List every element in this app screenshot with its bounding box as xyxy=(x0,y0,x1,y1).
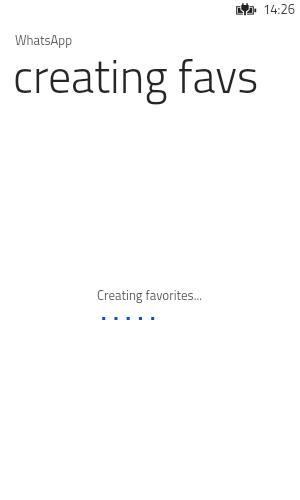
other: Loading xyxy=(0,317,300,322)
staticText: 14:26 xyxy=(263,0,295,19)
button[interactable]: creating favs xyxy=(13,41,259,111)
staticText: Creating favorites... xyxy=(97,285,203,305)
button[interactable]: 14:26 xyxy=(263,0,295,19)
button[interactable]: Battery charging xyxy=(236,3,258,18)
staticText: WhatsApp xyxy=(15,30,73,50)
button[interactable]: WhatsApp xyxy=(15,30,73,50)
staticText: creating favs xyxy=(13,41,259,111)
